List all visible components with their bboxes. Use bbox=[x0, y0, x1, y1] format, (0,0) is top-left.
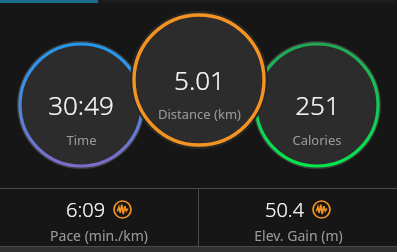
staticText: 6:09 bbox=[66, 196, 106, 223]
staticText: Calories bbox=[292, 131, 342, 149]
staticText: Elev. Gain (m) bbox=[254, 226, 343, 245]
staticText: Time bbox=[66, 131, 97, 149]
other: Activity detail bbox=[312, 200, 331, 219]
staticText: 50.4 bbox=[265, 196, 305, 223]
staticText: Distance (km) bbox=[158, 105, 241, 123]
button[interactable]: 50.4 bbox=[199, 189, 397, 246]
button[interactable]: 30:49 bbox=[48, 87, 114, 122]
button[interactable]: 6:09 bbox=[0, 189, 198, 246]
staticText: Pace (min./km) bbox=[50, 226, 148, 245]
other: Activity detail bbox=[113, 200, 132, 219]
button[interactable]: 5.01 bbox=[174, 62, 225, 97]
button[interactable]: 251 bbox=[295, 87, 340, 122]
